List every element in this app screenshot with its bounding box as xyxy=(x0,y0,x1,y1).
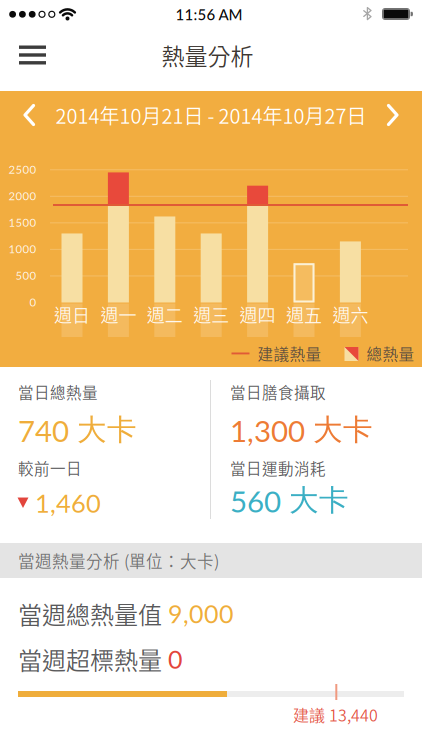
staticText: 當日運動消耗 xyxy=(230,457,326,479)
staticText: 建議 13,440 xyxy=(293,703,378,726)
staticText: 2500 xyxy=(8,162,36,176)
staticText: 560 大卡 xyxy=(230,482,349,519)
staticText: 2000 xyxy=(8,189,36,203)
staticText: 2014年10月21日 - 2014年10月27日 xyxy=(55,100,366,129)
staticText: 週一 xyxy=(100,301,136,328)
staticText: 0 xyxy=(168,644,183,674)
staticText: 熱量分析 xyxy=(161,38,253,72)
staticText: 週四 xyxy=(240,301,276,328)
staticText: 1500 xyxy=(8,215,36,229)
staticText: 當週熱量分析 (單位：大卡) xyxy=(18,549,219,572)
staticText: 週日 xyxy=(54,301,90,328)
staticText: 週五 xyxy=(286,301,322,328)
staticText: 1,300 大卡 xyxy=(230,411,373,449)
staticText: 11:56 AM xyxy=(175,5,242,23)
staticText: 9,000 xyxy=(168,598,234,628)
staticText: 0 xyxy=(29,295,36,309)
staticText: 當日膳食攝取 xyxy=(230,381,326,403)
staticText: 週三 xyxy=(193,301,229,328)
staticText: 總熱量 xyxy=(366,342,414,365)
staticText: 週六 xyxy=(332,301,368,328)
staticText: 當週總熱量值 xyxy=(18,596,162,631)
staticText: 740 大卡 xyxy=(18,411,137,449)
staticText: 當週超標熱量 xyxy=(18,642,162,676)
staticText: 建議熱量 xyxy=(257,342,321,365)
staticText: 1,460 xyxy=(35,488,101,518)
staticText: 當日總熱量 xyxy=(18,381,98,403)
staticText: 500 xyxy=(15,269,36,282)
staticText: 較前一日 xyxy=(18,457,82,479)
staticText: 週二 xyxy=(147,301,183,328)
staticText: 1000 xyxy=(8,242,36,256)
